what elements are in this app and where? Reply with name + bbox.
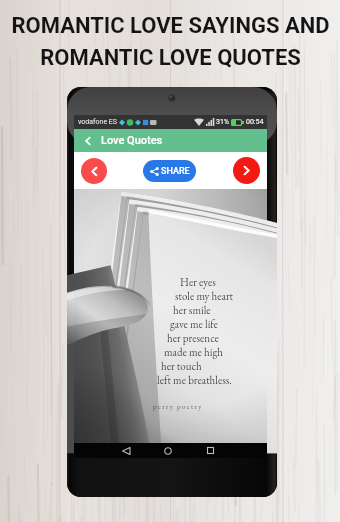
staticText: 00:54	[246, 118, 264, 126]
staticText: 31%	[216, 118, 229, 126]
staticText: gave me life	[170, 317, 218, 331]
staticText: her presence	[167, 331, 219, 345]
staticText: her smile	[173, 303, 211, 317]
button[interactable]: Home	[158, 443, 178, 458]
staticText: perry poetry	[153, 402, 203, 411]
staticText: ROMANTIC LOVE QUOTES	[40, 45, 301, 71]
staticText: vodafone ES	[78, 118, 117, 126]
button[interactable]: Recent apps	[200, 443, 220, 458]
staticText: made me high	[164, 345, 223, 359]
staticText: SHARE	[161, 166, 190, 177]
staticText: Love Quotes	[101, 134, 163, 147]
button[interactable]: Navigate up	[79, 132, 96, 149]
staticText: Her eyes	[180, 275, 216, 289]
staticText: ROMANTIC LOVE SAYINGS AND	[11, 13, 330, 39]
button[interactable]: Back	[116, 443, 136, 458]
staticText: left me breathless.	[157, 373, 232, 387]
button[interactable]: Previous quote	[81, 158, 107, 184]
button[interactable]: Next quote	[233, 157, 260, 184]
button[interactable]: SHARE	[143, 160, 196, 182]
staticText: her touch	[161, 359, 202, 373]
staticText: stole my heart	[175, 289, 234, 303]
